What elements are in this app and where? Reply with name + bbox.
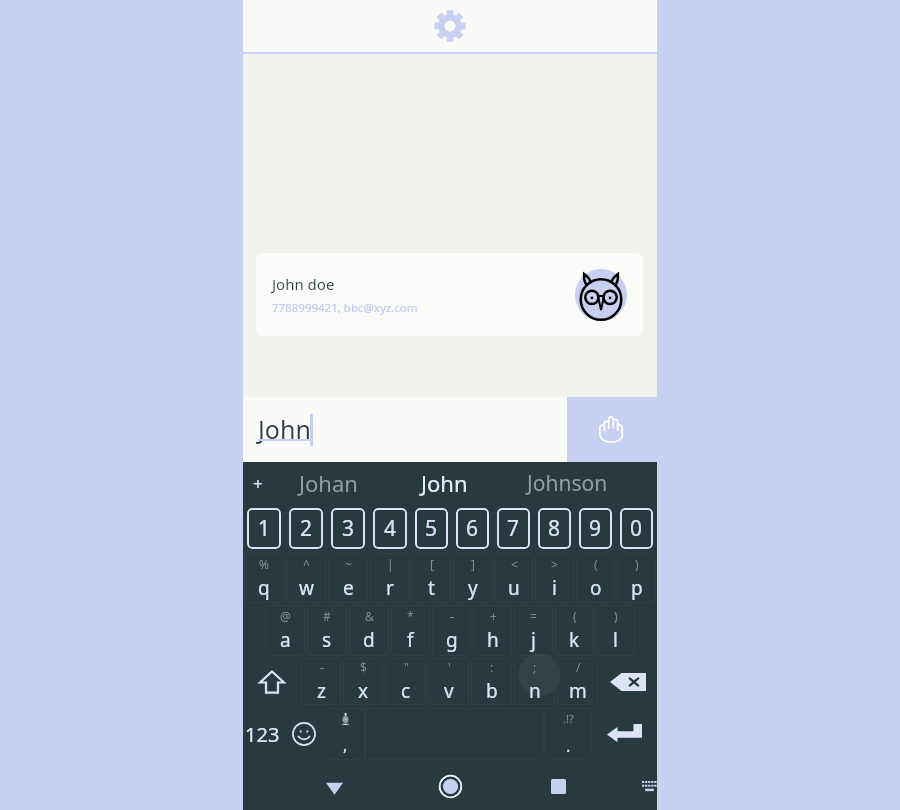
- staticText: m: [569, 678, 587, 704]
- button[interactable]: Recents: [475, 762, 642, 810]
- button[interactable]: (: [576, 553, 615, 603]
- button[interactable]: 6: [456, 508, 489, 549]
- staticText: 1: [258, 514, 271, 543]
- staticText: ): [614, 608, 618, 624]
- button[interactable]: Settings: [428, 4, 472, 48]
- staticText: l: [613, 627, 618, 653]
- button[interactable]: 123: [243, 706, 282, 762]
- staticText: <: [511, 556, 518, 572]
- staticText: h: [487, 627, 499, 653]
- staticText: p: [631, 575, 643, 601]
- staticText: x: [358, 678, 369, 704]
- button[interactable]: #: [307, 605, 347, 656]
- button[interactable]: <: [494, 553, 533, 603]
- button[interactable]: ]: [453, 553, 492, 603]
- button[interactable]: Comma: [325, 708, 365, 760]
- staticText: ]: [471, 556, 475, 572]
- button[interactable]: Emoji: [282, 706, 325, 762]
- staticText: k: [569, 627, 580, 653]
- button[interactable]: Backspace: [599, 657, 657, 706]
- button[interactable]: 5: [415, 508, 448, 549]
- staticText: 0: [630, 514, 643, 543]
- button[interactable]: 1: [247, 508, 281, 549]
- staticText: /: [576, 659, 581, 675]
- button[interactable]: John: [383, 462, 505, 504]
- staticText: s: [322, 627, 332, 653]
- button[interactable]: Johnson: [505, 462, 629, 504]
- button[interactable]: 7: [497, 508, 530, 549]
- button[interactable]: ;: [514, 658, 555, 705]
- button[interactable]: John: [243, 397, 567, 462]
- button[interactable]: 8: [538, 508, 571, 549]
- button[interactable]: /: [557, 658, 598, 705]
- staticText: :: [490, 659, 494, 675]
- button[interactable]: 3: [331, 508, 365, 549]
- button[interactable]: 2: [289, 508, 323, 549]
- staticText: +: [490, 608, 497, 624]
- staticText: |: [387, 556, 394, 572]
- staticText: 7: [507, 514, 520, 543]
- button[interactable]: @: [265, 605, 305, 656]
- button[interactable]: ': [428, 658, 469, 705]
- button[interactable]: 4: [373, 508, 407, 549]
- staticText: -: [450, 608, 454, 624]
- button[interactable]: ~: [328, 553, 368, 603]
- staticText: #: [323, 608, 331, 624]
- button[interactable]: ": [385, 658, 426, 705]
- button[interactable]: ): [617, 553, 656, 603]
- button[interactable]: 9: [579, 508, 612, 549]
- button[interactable]: Home: [425, 762, 475, 810]
- button[interactable]: Johan: [273, 462, 383, 504]
- staticText: =: [530, 608, 537, 624]
- staticText: 3: [342, 514, 355, 543]
- button[interactable]: Back: [243, 762, 425, 810]
- staticText: o: [590, 575, 602, 601]
- button[interactable]: 0: [620, 508, 653, 549]
- button[interactable]: -: [301, 658, 341, 705]
- button[interactable]: (: [555, 605, 594, 656]
- button[interactable]: |: [370, 553, 410, 603]
- staticText: ): [635, 556, 639, 572]
- button[interactable]: +: [473, 605, 512, 656]
- staticText: -: [320, 659, 324, 675]
- staticText: ": [404, 659, 409, 675]
- staticText: .: [566, 735, 571, 757]
- staticText: .!?: [563, 711, 574, 726]
- staticText: f: [407, 627, 414, 653]
- button[interactable]: *: [391, 605, 430, 656]
- staticText: +: [253, 472, 263, 495]
- button[interactable]: Period: [544, 708, 592, 760]
- button[interactable]: Add: [243, 462, 273, 504]
- button[interactable]: Stop: [567, 397, 657, 462]
- staticText: *: [407, 608, 414, 624]
- button[interactable]: Switch keyboard: [642, 762, 657, 810]
- button[interactable]: =: [514, 605, 553, 656]
- staticText: q: [258, 575, 270, 601]
- button[interactable]: [: [412, 553, 451, 603]
- button[interactable]: ^: [286, 553, 326, 603]
- staticText: w: [299, 575, 314, 601]
- button[interactable]: :: [471, 658, 512, 705]
- staticText: ;: [533, 659, 537, 675]
- button[interactable]: $: [343, 658, 383, 705]
- staticText: g: [446, 627, 458, 653]
- button[interactable]: Shift: [243, 657, 300, 706]
- staticText: b: [486, 678, 498, 704]
- button[interactable]: >: [535, 553, 574, 603]
- staticText: ': [448, 659, 451, 675]
- staticText: 4: [384, 514, 397, 543]
- button[interactable]: -: [432, 605, 471, 656]
- button[interactable]: John doe: [256, 253, 643, 336]
- staticText: 7788999421, bbc@xyz.com: [272, 300, 418, 316]
- button[interactable]: %: [244, 553, 284, 603]
- staticText: 5: [425, 514, 438, 543]
- staticText: 2: [300, 514, 313, 543]
- button[interactable]: ): [596, 605, 635, 656]
- button[interactable]: Enter: [592, 706, 657, 762]
- staticText: v: [444, 678, 454, 704]
- staticText: c: [401, 678, 411, 704]
- button[interactable]: &: [349, 605, 389, 656]
- staticText: @: [280, 608, 291, 624]
- staticText: >: [551, 556, 558, 572]
